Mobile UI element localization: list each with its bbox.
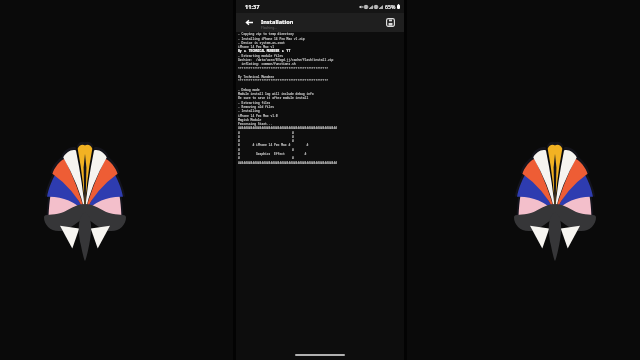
staticText: Installation — [261, 18, 294, 26]
staticText: # # — [238, 139, 294, 143]
staticText: Processing Start... — [238, 122, 273, 126]
staticText: - Copying zip to temp directory — [238, 32, 294, 36]
staticText: Module install log will include debug in… — [238, 92, 314, 96]
staticText: # # — [238, 131, 294, 135]
button[interactable]: Back — [244, 17, 255, 28]
staticText: By Technical Mundeer — [238, 75, 275, 79]
staticText: ****************************************… — [238, 67, 329, 71]
staticText: # # — [238, 156, 294, 160]
staticText: Magisk Module — [238, 118, 262, 122]
staticText: By ▶ TECHNICAL MUNDEER ▶ YT — [238, 49, 291, 53]
staticText: ########################################… — [238, 126, 338, 130]
staticText: Flashing... — [261, 25, 278, 30]
staticText: - Installing — [238, 109, 260, 113]
staticText: - Debug mode — [238, 88, 260, 92]
staticText: Be sure to save it after module install — [238, 96, 309, 100]
staticText: # Graphics Effect # — [238, 152, 307, 156]
staticText: - Device is system-as-root — [238, 41, 285, 45]
staticText: # # iPhone 14 Pro Max # # — [238, 143, 309, 147]
staticText: - Extracting files — [238, 101, 271, 105]
staticText: - Removing old files — [238, 105, 275, 109]
staticText: 11:37 — [245, 3, 260, 11]
staticText: - Extracting module files — [238, 54, 284, 58]
staticText: - Installing iPhone 14 Pro Max v1.zip — [238, 37, 305, 41]
staticText: # # — [238, 135, 294, 139]
button[interactable]: Save — [385, 17, 396, 28]
staticText: Archive: /data/user/0/bgd.jj/cache/flash… — [238, 58, 334, 62]
staticText: inflating: common/functions.sh — [238, 62, 296, 66]
staticText: ****************************************… — [238, 79, 329, 83]
staticText: # # — [238, 148, 294, 152]
staticText: ########################################… — [238, 161, 338, 165]
staticText: iPhone 14 Pro Max v1.0 — [238, 114, 278, 118]
staticText: iPhone 14 Pro Max v1 — [238, 45, 275, 49]
staticText: 65% — [385, 3, 396, 10]
